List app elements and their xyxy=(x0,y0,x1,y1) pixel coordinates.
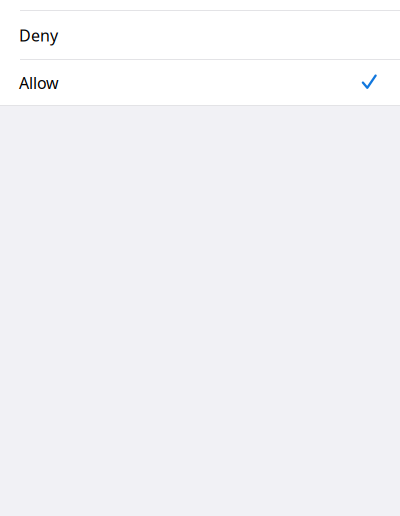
button[interactable]: Deny xyxy=(0,11,400,59)
button[interactable]: Allow xyxy=(0,60,400,105)
staticText: Deny xyxy=(19,25,58,46)
staticText: Allow xyxy=(19,72,59,93)
